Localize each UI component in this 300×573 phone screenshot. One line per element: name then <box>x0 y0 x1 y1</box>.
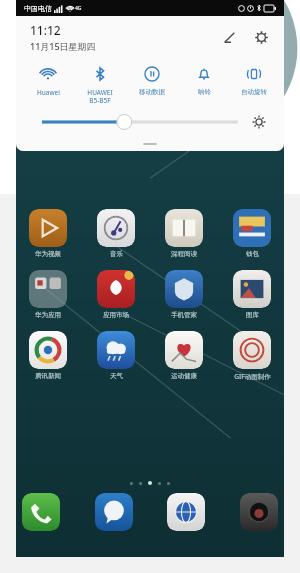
staticText: 运动健康 <box>171 372 197 380</box>
button[interactable]: 华为应用 <box>22 270 74 319</box>
button[interactable]: 手机管家 <box>158 270 210 319</box>
button[interactable]: 华为视频 <box>22 209 74 258</box>
button[interactable]: 运动健康 <box>158 331 210 380</box>
staticText: 华为视频 <box>35 250 61 258</box>
staticText: 音乐 <box>110 250 123 258</box>
staticText: 手机管家 <box>171 311 197 319</box>
button[interactable]: 音乐 <box>90 209 142 258</box>
button[interactable]: Edit <box>216 24 242 50</box>
staticText: 移动数据 <box>139 88 165 96</box>
button[interactable]: 钱包 <box>226 209 278 258</box>
button[interactable]: 天气 <box>90 331 142 380</box>
staticText: 11月15日星期四 <box>30 40 96 52</box>
staticText: 应用市场 <box>103 311 129 319</box>
button[interactable]: Browser <box>167 493 205 531</box>
staticText: 自动旋转 <box>241 88 267 96</box>
button[interactable]: Messages <box>95 493 133 531</box>
staticText: 中国电信 <box>24 4 52 13</box>
button[interactable]: 深程阅读 <box>158 209 210 258</box>
button[interactable]: Phone <box>22 493 60 531</box>
button[interactable]: Mobile data <box>126 62 178 96</box>
staticText: 钱包 <box>246 250 259 258</box>
staticText: 天气 <box>110 372 123 380</box>
button[interactable]: 腾讯新闻 <box>22 331 74 380</box>
button[interactable]: Wi-Fi <box>22 62 74 97</box>
button[interactable]: Camera <box>240 493 278 531</box>
staticText: 图库 <box>246 311 259 319</box>
button[interactable]: Settings <box>248 24 274 50</box>
button[interactable] <box>42 113 238 131</box>
button[interactable]: Auto rotate <box>230 62 278 96</box>
staticText: Huawei <box>37 88 60 97</box>
staticText: 4G <box>75 5 82 12</box>
button[interactable]: 图库 <box>226 270 278 319</box>
button[interactable]: GIF动图制作 <box>226 331 278 381</box>
button[interactable]: Auto brightness <box>248 111 270 133</box>
button[interactable]: 应用市场 <box>90 270 142 319</box>
button[interactable]: Ringer <box>178 62 230 96</box>
staticText: 11:12 <box>30 22 61 38</box>
staticText: 腾讯新闻 <box>35 372 61 380</box>
staticText: 华为应用 <box>35 311 61 319</box>
staticText: GIF动图制作 <box>234 372 271 381</box>
staticText: HUAWEI B5-B5F <box>87 88 113 105</box>
button[interactable]: Bluetooth <box>74 62 126 105</box>
staticText: 响铃 <box>198 88 211 96</box>
staticText: 深程阅读 <box>171 250 197 258</box>
